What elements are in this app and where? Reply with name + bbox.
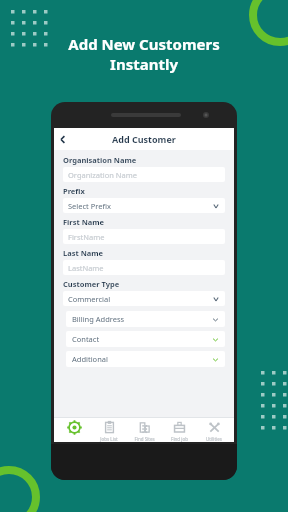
button[interactable]: FirstName <box>63 229 225 244</box>
staticText: Commercial <box>68 294 111 304</box>
button[interactable]: Billing Address <box>66 311 225 327</box>
staticText: Last Name <box>63 248 104 258</box>
staticText: Find Sites <box>134 436 155 442</box>
staticText: Find job <box>171 436 188 442</box>
button[interactable]: Jobs List <box>92 418 126 442</box>
staticText: Customer Type <box>63 279 120 289</box>
staticText: Prefix <box>63 186 85 196</box>
staticText: Instantly <box>110 54 178 74</box>
button[interactable]: Find job <box>162 418 196 442</box>
button[interactable]: Utilities <box>197 418 231 442</box>
button[interactable]: Organization Name <box>63 167 225 182</box>
staticText: Utilities <box>206 436 222 442</box>
button[interactable]: Select Prefix <box>63 198 225 213</box>
button[interactable]: Commercial <box>63 291 225 306</box>
staticText: Additional <box>72 354 108 364</box>
staticText: Billing Address <box>72 314 125 324</box>
staticText: Add Customer <box>112 133 176 145</box>
staticText: Select Prefix <box>68 201 111 211</box>
staticText: Add New Customers <box>68 34 220 54</box>
staticText: First Name <box>63 217 105 227</box>
staticText: LastName <box>68 263 104 273</box>
button[interactable]: Contact <box>66 331 225 347</box>
staticText: Organization Name <box>68 170 137 180</box>
staticText: Jobs List <box>100 436 118 442</box>
button[interactable] <box>57 418 91 442</box>
staticText: FirstName <box>68 232 105 242</box>
staticText: Organisation Name <box>63 155 137 165</box>
button[interactable]: LastName <box>63 260 225 275</box>
button[interactable]: Additional <box>66 351 225 367</box>
staticText: Contact <box>72 334 100 344</box>
button[interactable]: Back <box>54 130 72 148</box>
button[interactable]: Find Sites <box>127 418 161 442</box>
